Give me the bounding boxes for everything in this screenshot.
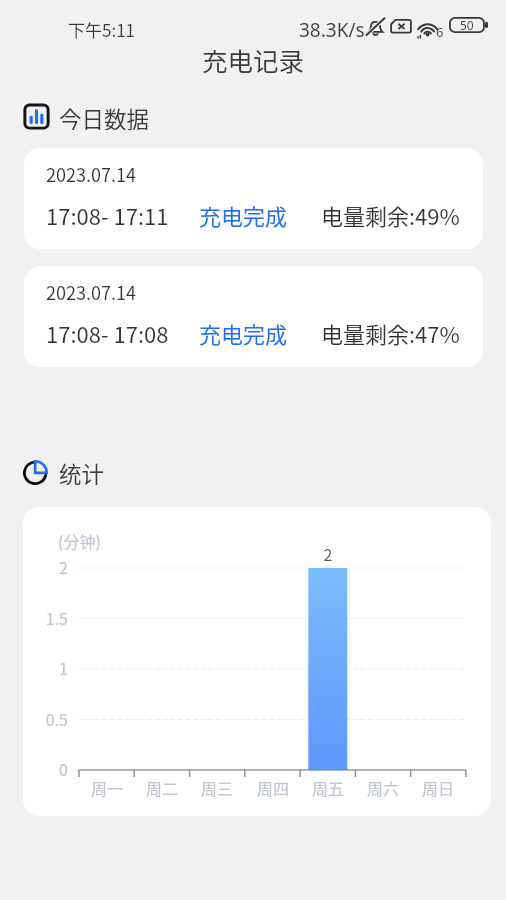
staticText: 周六 [356,776,410,799]
staticText: 6 [436,23,444,41]
staticText: 充电完成 [199,199,288,231]
button[interactable]: 今日数据 [23,102,150,130]
staticText: 2023.07.14 [46,279,136,305]
button[interactable]: 2023.07.14 [24,148,483,249]
staticText: 0 [23,757,68,780]
staticText: 17:08- 17:11 [46,199,169,231]
staticText: 0.5 [23,707,68,730]
staticText: 17:08- 17:08 [46,317,169,349]
staticText: 2 [308,542,348,565]
staticText: 今日数据 [59,102,150,130]
staticText: (分钟) [58,529,101,552]
staticText: 周三 [190,776,244,799]
staticText: 周四 [246,776,300,799]
staticText: 下午5:11 [68,17,136,42]
button[interactable]: 2023.07.14 [24,266,483,367]
staticText: 统计 [59,457,105,485]
staticText: 周五 [301,776,355,799]
staticText: 电量剩余:47% [321,317,460,349]
button[interactable]: 统计 [23,457,105,485]
staticText: 1.5 [23,606,68,629]
staticText: 50 [460,17,474,33]
other: 今日数据 [23,103,50,130]
staticText: 充电记录 [202,41,305,77]
staticText: 电量剩余:49% [321,199,460,231]
staticText: 2023.07.14 [46,161,136,187]
staticText: 周日 [411,776,465,799]
staticText: 1 [23,656,68,679]
other: 统计 [23,458,50,485]
staticText: 38.3K/s [299,17,365,43]
staticText: 周二 [135,776,189,799]
staticText: 充电完成 [199,317,288,349]
staticText: 2 [23,555,68,578]
staticText: 周一 [80,776,134,799]
